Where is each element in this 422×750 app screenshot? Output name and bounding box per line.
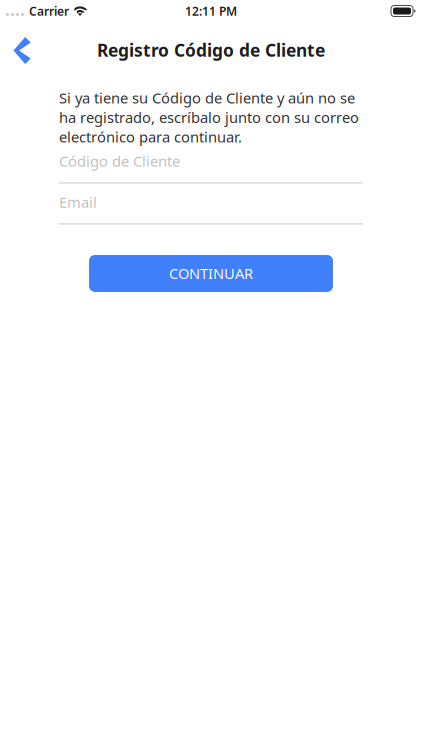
staticText: 12:11 PM — [185, 3, 237, 19]
staticText: CONTINUAR — [169, 264, 253, 283]
staticText: Carrier — [29, 3, 69, 19]
staticText: Si ya tiene su Código de Cliente y aún n… — [59, 88, 359, 146]
button[interactable]: Back — [0, 29, 44, 73]
staticText: Email — [59, 192, 97, 212]
button[interactable]: CONTINUAR — [89, 255, 332, 291]
button[interactable]: Código de Cliente — [59, 151, 363, 183]
staticText: Registro Código de Cliente — [97, 38, 325, 61]
button[interactable]: Email — [59, 192, 363, 224]
staticText: Código de Cliente — [59, 151, 180, 171]
